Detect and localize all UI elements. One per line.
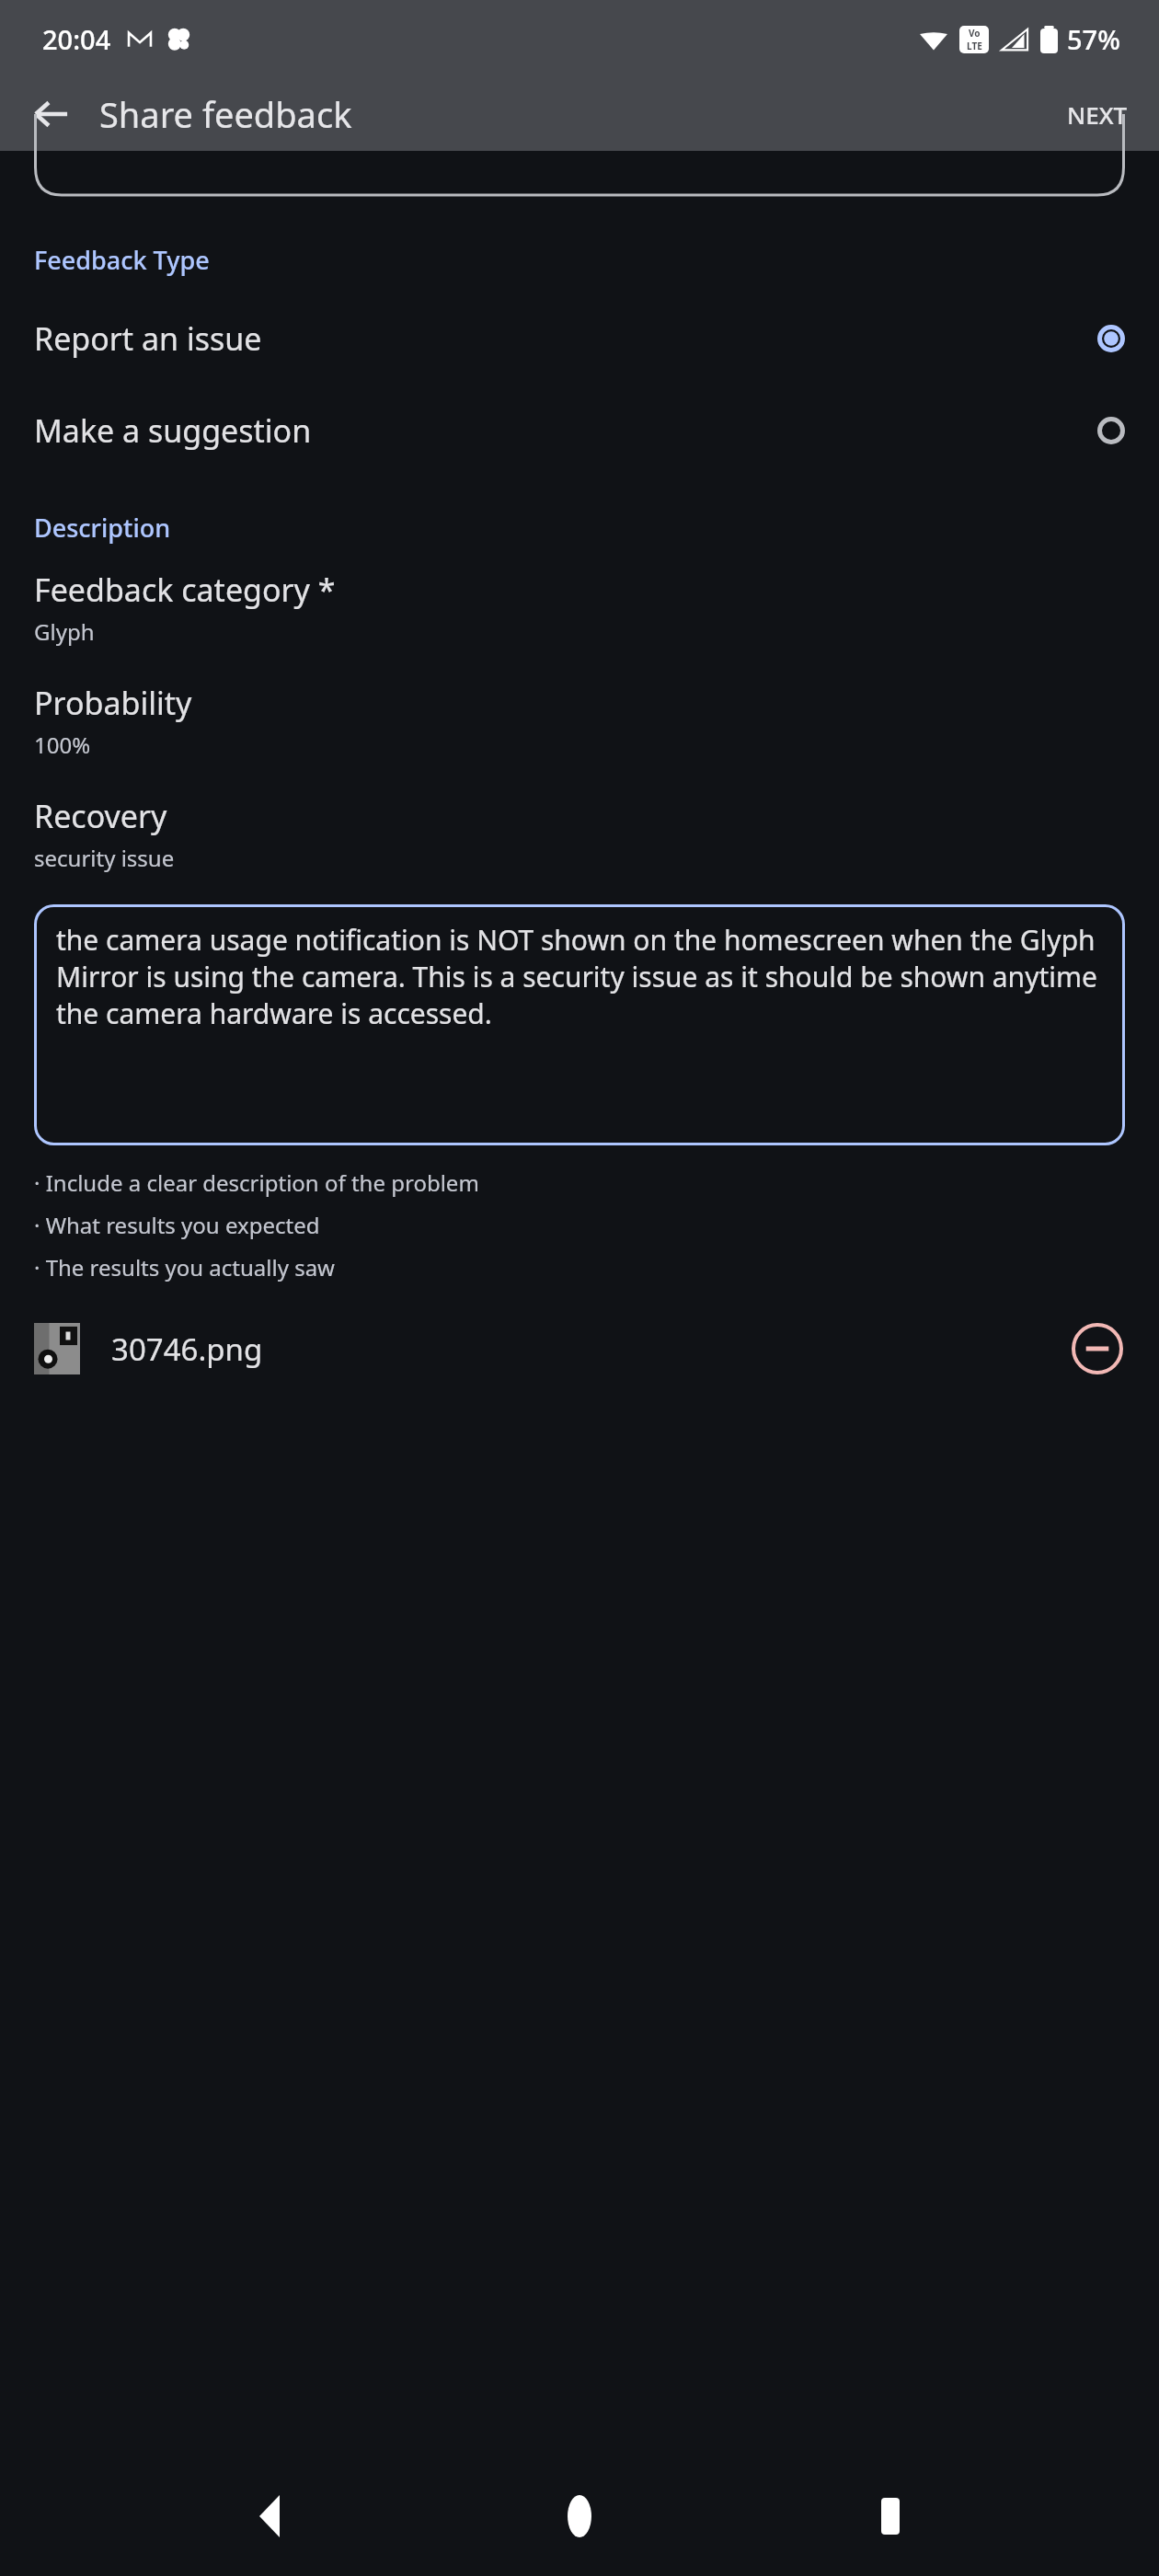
staticText: 20:04 <box>42 21 111 57</box>
button[interactable]: NEXT <box>1054 89 1141 140</box>
staticText: security issue <box>34 843 175 873</box>
button[interactable]: Recents <box>849 2475 932 2558</box>
button[interactable]: Feedback category * <box>0 569 1159 647</box>
staticText: Make a suggestion <box>34 409 312 452</box>
staticText: the camera usage notification is NOT sho… <box>56 921 1107 1032</box>
staticText: Vo <box>969 27 981 40</box>
button[interactable]: 30746.png <box>0 1321 1159 1376</box>
staticText: Glyph <box>34 616 95 647</box>
staticText: 57% <box>1067 21 1120 57</box>
staticText: NEXT <box>1067 98 1128 131</box>
button[interactable]: Home <box>538 2475 621 2558</box>
staticText: LTE <box>967 40 982 52</box>
staticText: 100% <box>34 730 91 760</box>
staticText: Probability <box>34 682 192 724</box>
button[interactable]: Recovery <box>0 795 1159 873</box>
button[interactable]: Back <box>228 2475 311 2558</box>
button[interactable]: Probability <box>0 682 1159 760</box>
staticText: Recovery <box>34 795 167 837</box>
button[interactable]: the camera usage notification is NOT sho… <box>34 904 1125 1145</box>
staticText: Share feedback <box>99 90 352 138</box>
button[interactable]: Make a suggestion <box>0 395 1159 466</box>
staticText: · Include a clear description of the pro… <box>34 1167 479 1198</box>
staticText: Report an issue <box>34 317 262 360</box>
staticText: Description <box>34 511 171 545</box>
button[interactable]: Back <box>20 83 83 145</box>
button[interactable]: Report an issue <box>0 303 1159 374</box>
staticText: Feedback category * <box>34 569 336 611</box>
staticText: 30746.png <box>111 1328 263 1370</box>
staticText: · What results you expected <box>34 1210 320 1240</box>
staticText: Feedback Type <box>34 243 210 277</box>
staticText: · The results you actually saw <box>34 1252 335 1282</box>
button[interactable]: Remove attachment <box>1070 1321 1125 1376</box>
